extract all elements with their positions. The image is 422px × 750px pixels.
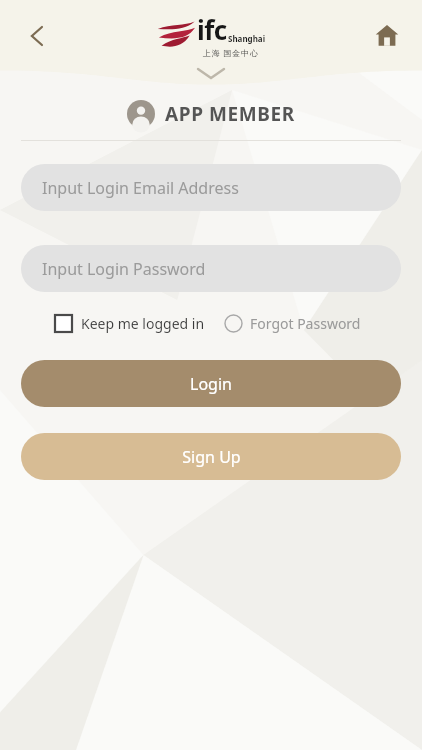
button[interactable]: Forgot Password <box>224 314 361 333</box>
button[interactable]: Keep me logged in <box>55 314 205 333</box>
staticText: Shanghai <box>228 33 266 44</box>
button[interactable]: Expand <box>191 64 231 82</box>
button[interactable]: Sign Up <box>21 433 401 480</box>
staticText: 上海 国金中心 <box>203 47 259 58</box>
staticText: APP MEMBER <box>165 101 295 127</box>
staticText: Login <box>190 373 232 395</box>
staticText: Sign Up <box>182 446 241 468</box>
staticText: Forgot Password <box>250 314 361 333</box>
staticText: Input Login Password <box>42 258 206 280</box>
button[interactable]: Back <box>16 14 60 58</box>
button[interactable]: Home <box>366 14 408 56</box>
button[interactable]: Login <box>21 360 401 407</box>
staticText: Keep me logged in <box>81 314 205 333</box>
button[interactable]: Input Login Password <box>21 245 401 292</box>
staticText: ifc <box>197 12 227 47</box>
staticText: Input Login Email Address <box>42 177 239 199</box>
button[interactable]: Input Login Email Address <box>21 164 401 211</box>
